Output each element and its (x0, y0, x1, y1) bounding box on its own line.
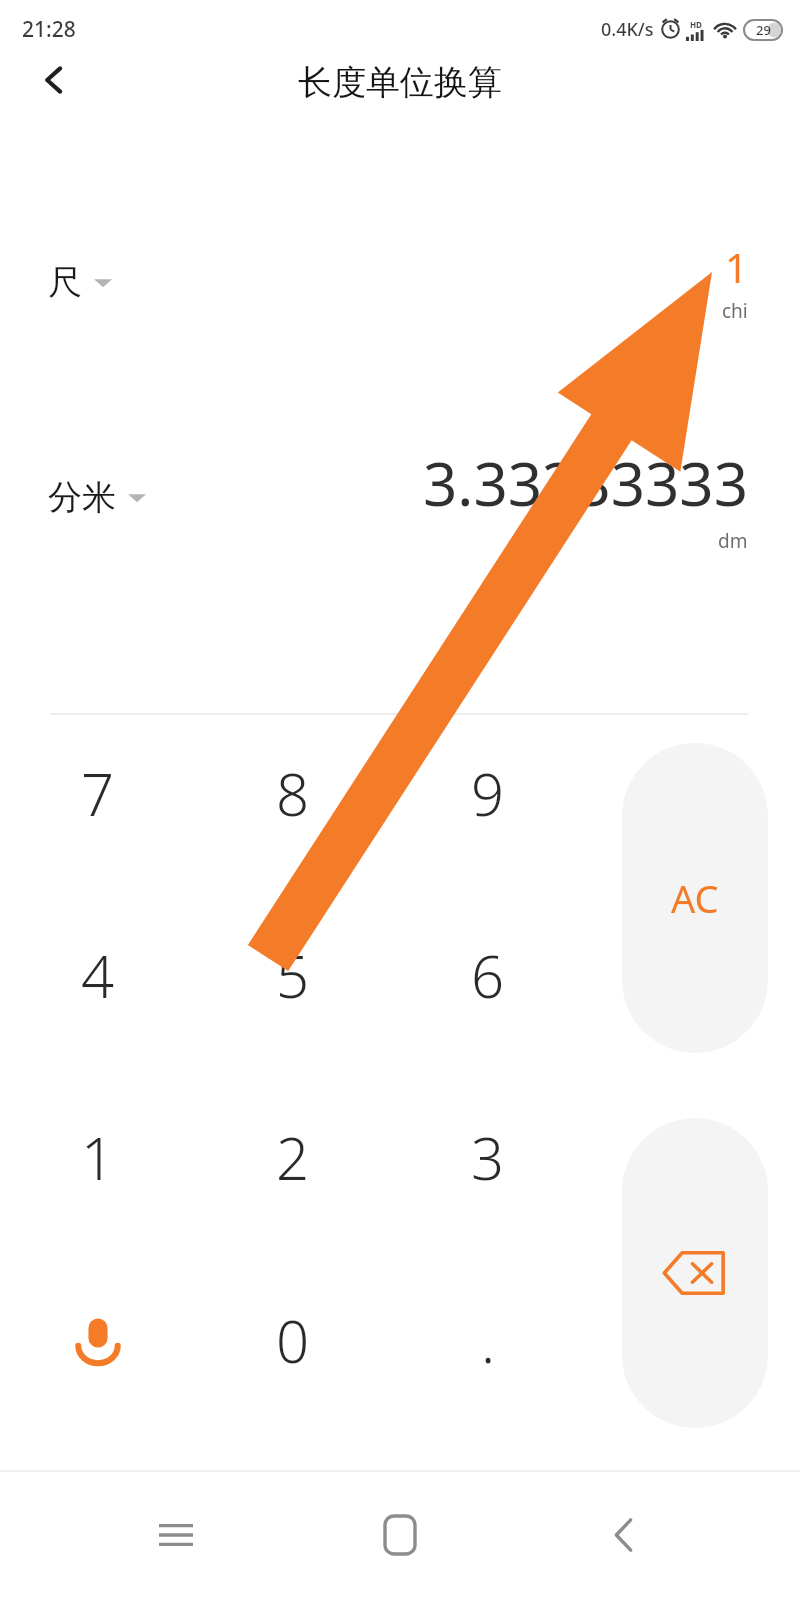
staticText: 1 (81, 1118, 115, 1197)
staticText: 尺 (48, 261, 82, 304)
button[interactable]: . (398, 1256, 578, 1424)
staticText: 分米 (48, 476, 116, 519)
staticText: 5 (276, 936, 310, 1015)
staticText: 9 (471, 754, 505, 833)
staticText: dm (718, 528, 748, 552)
staticText: . (481, 1301, 496, 1380)
button[interactable]: Back (26, 52, 82, 108)
staticText: 6 (471, 936, 505, 1015)
button[interactable]: Back (576, 1487, 672, 1583)
button[interactable]: Delete (622, 1118, 768, 1428)
staticText: AC (671, 872, 719, 924)
staticText: 0 (276, 1301, 310, 1380)
button[interactable]: 4 (8, 891, 188, 1059)
staticText: 2 (276, 1118, 310, 1197)
button[interactable]: 尺 (48, 261, 112, 304)
staticText: 0.4K/s (601, 17, 654, 42)
staticText: HD (690, 19, 702, 30)
button[interactable]: 0 (203, 1256, 383, 1424)
button[interactable]: Recent apps (128, 1487, 224, 1583)
button[interactable]: 7 (8, 709, 188, 877)
staticText: 长度单位换算 (298, 61, 502, 104)
staticText: 7 (81, 754, 115, 833)
staticText: 1 (725, 240, 748, 294)
staticText: 3.33333333 (423, 442, 748, 524)
button[interactable]: 1 (8, 1073, 188, 1241)
button[interactable]: 9 (398, 709, 578, 877)
staticText: 8 (276, 754, 310, 833)
button[interactable]: 8 (203, 709, 383, 877)
button[interactable]: 分米 (48, 476, 146, 519)
staticText: 4 (81, 936, 115, 1015)
button[interactable]: 3 (398, 1073, 578, 1241)
staticText: 3 (471, 1118, 505, 1197)
button[interactable]: Home (352, 1487, 448, 1583)
button[interactable]: Voice input (8, 1256, 188, 1424)
button[interactable]: 6 (398, 891, 578, 1059)
button[interactable]: 5 (203, 891, 383, 1059)
staticText: chi (722, 298, 748, 324)
button[interactable]: 2 (203, 1073, 383, 1241)
staticText: 21:28 (22, 15, 76, 44)
staticText: 29 (756, 21, 771, 39)
button[interactable]: AC (622, 743, 768, 1053)
